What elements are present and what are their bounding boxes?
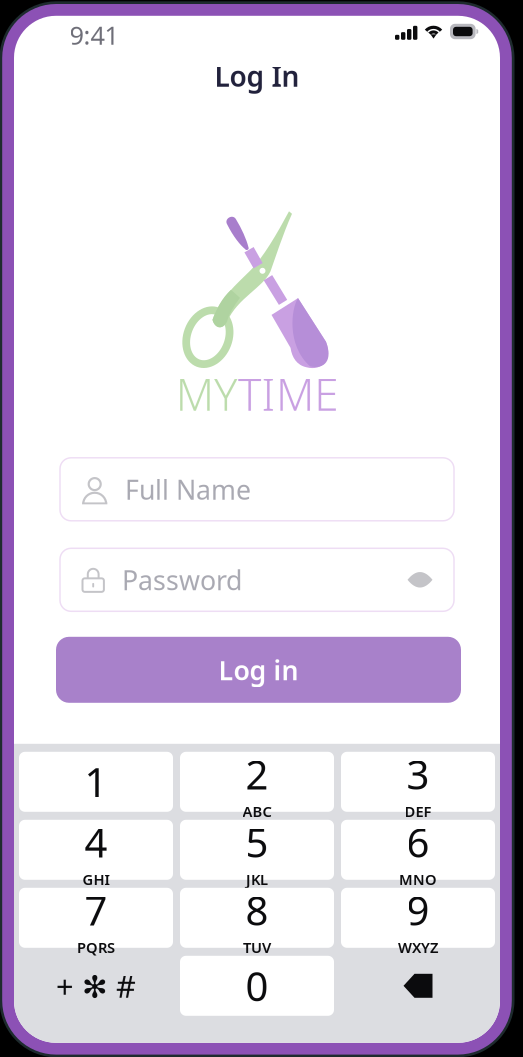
staticText: 4 [84, 815, 107, 869]
staticText: 5 [245, 815, 268, 869]
staticText: MY [176, 365, 238, 423]
button[interactable]: Symbols [19, 956, 173, 1016]
button[interactable]: Password [60, 548, 454, 611]
staticText: JKL [246, 870, 268, 889]
staticText: Log In [214, 57, 299, 94]
staticText: Password [122, 562, 242, 597]
staticText: ABC [242, 802, 271, 821]
staticText: DEF [404, 802, 431, 821]
staticText: 9:41 [69, 18, 118, 52]
staticText: 3 [406, 747, 429, 801]
staticText: 8 [245, 883, 268, 937]
staticText: GHI [82, 870, 109, 889]
staticText: TIME [238, 365, 338, 423]
button[interactable]: 8 [180, 888, 334, 948]
staticText: Full Name [125, 472, 251, 507]
staticText: 7 [84, 883, 107, 937]
button[interactable]: Delete [341, 956, 495, 1016]
button[interactable]: 6 [341, 820, 495, 880]
button[interactable]: 2 [180, 752, 334, 812]
staticText: TUV [243, 938, 271, 957]
button[interactable]: 4 [19, 820, 173, 880]
staticText: 6 [406, 815, 429, 869]
staticText: PQRS [77, 938, 115, 957]
staticText: 2 [245, 747, 268, 801]
button[interactable]: 3 [341, 752, 495, 812]
button[interactable]: Full Name [60, 458, 454, 521]
button[interactable]: 5 [180, 820, 334, 880]
button[interactable]: Log in [56, 637, 461, 703]
button[interactable]: 1 [19, 752, 173, 812]
staticText: Log in [218, 652, 298, 687]
staticText: MNO [399, 870, 437, 889]
staticText: WXYZ [398, 938, 438, 957]
staticText: 1 [84, 755, 107, 808]
button[interactable]: 9 [341, 888, 495, 948]
button[interactable]: 0 [180, 956, 334, 1016]
staticText: 0 [245, 959, 268, 1012]
button[interactable]: 7 [19, 888, 173, 948]
staticText: + ✻ # [56, 965, 136, 1006]
staticText: 9 [406, 883, 429, 937]
